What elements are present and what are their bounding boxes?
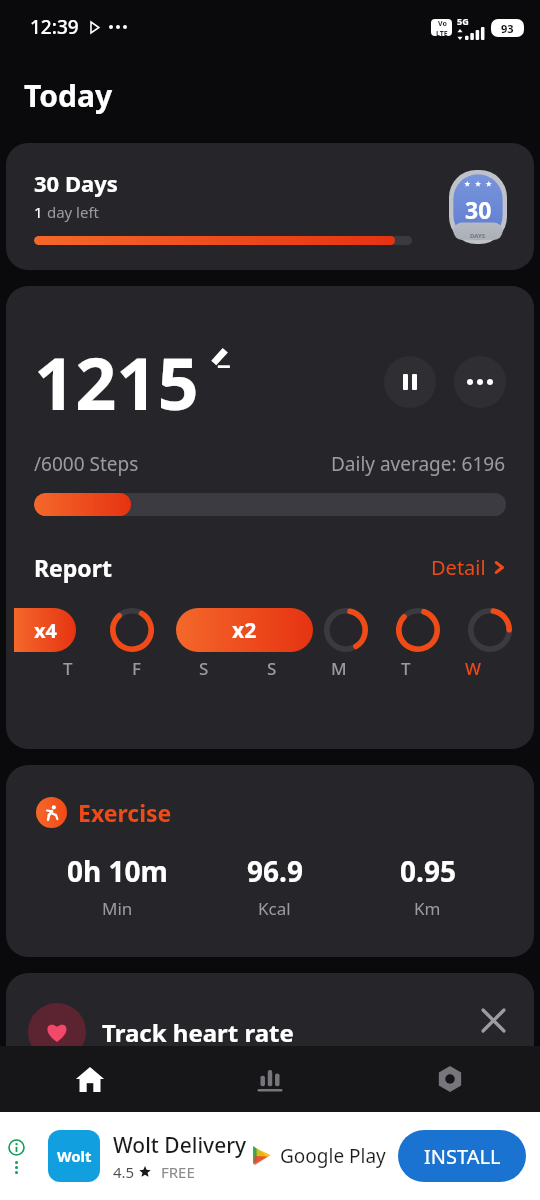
button[interactable]: Settings [360, 1046, 540, 1112]
staticText: 12:39 [30, 14, 79, 40]
staticText: 5G [457, 15, 469, 27]
staticText: FREE [161, 1162, 195, 1182]
staticText: Exercise [78, 797, 172, 828]
button[interactable]: 30 Days [6, 143, 534, 270]
button[interactable]: More options [454, 356, 506, 408]
button[interactable]: x4 [14, 608, 76, 652]
button[interactable]: Home [0, 1046, 180, 1112]
staticText: Report [34, 552, 112, 583]
staticText: Kcal [258, 897, 291, 920]
staticText: S [199, 657, 209, 680]
staticText: T [63, 657, 73, 680]
button[interactable]: Day progress [396, 608, 440, 652]
button[interactable]: Day progress [324, 608, 368, 652]
staticText: Wolt [57, 1146, 92, 1166]
staticText: 4.5 [113, 1162, 135, 1182]
staticText: INSTALL [424, 1143, 501, 1170]
staticText: x2 [232, 616, 257, 645]
button[interactable]: Track heart rate [6, 973, 534, 1113]
staticText: 96.9 [247, 852, 303, 890]
button[interactable]: Edit goal [205, 341, 235, 371]
staticText: day left [43, 202, 99, 222]
staticText: /6000 Steps [34, 451, 139, 477]
staticText: 93 [501, 21, 514, 36]
button[interactable]: Pause [384, 356, 436, 408]
staticText: Track heart rate [102, 1016, 294, 1049]
staticText: 1215 [34, 333, 199, 431]
staticText: 30 Days [34, 168, 118, 198]
button[interactable]: Exercise [6, 765, 534, 957]
staticText: F [132, 657, 141, 680]
staticText: Wolt Delivery [113, 1131, 247, 1160]
button[interactable]: Day progress [468, 608, 512, 652]
staticText: Km [414, 897, 441, 920]
staticText: S [267, 657, 277, 680]
staticText: x4 [34, 617, 57, 644]
staticText: Min [102, 897, 133, 920]
staticText: Google Play [280, 1143, 386, 1169]
staticText: Today [24, 75, 113, 116]
button[interactable]: x2 [176, 608, 313, 652]
button[interactable]: Day progress [110, 608, 154, 652]
staticText: T [401, 657, 411, 680]
staticText: 1 [34, 202, 43, 222]
staticText: 0.95 [400, 852, 456, 890]
staticText: W [465, 657, 481, 680]
staticText: DAYS [470, 232, 486, 240]
button[interactable]: Close [476, 1003, 510, 1037]
button[interactable]: INSTALL [398, 1130, 526, 1182]
staticText: Vo [438, 19, 447, 29]
staticText: M [331, 657, 347, 680]
staticText: LTE [436, 29, 448, 36]
button[interactable]: Detail [431, 554, 506, 581]
staticText: Daily average: 6196 [331, 451, 506, 477]
button[interactable]: Statistics [180, 1046, 360, 1112]
staticText: 30 [465, 194, 492, 225]
staticText: 0h 10m [67, 852, 168, 890]
staticText: Detail [431, 554, 486, 581]
